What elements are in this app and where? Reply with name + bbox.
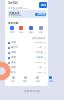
staticText: 消息 <box>36 80 40 83</box>
button[interactable]: 我的 <box>44 76 57 83</box>
button[interactable]: 花呗 <box>8 50 46 55</box>
staticText: 1,250.00 <box>34 41 43 44</box>
staticText: 我的 <box>49 80 53 83</box>
staticText: 保险 <box>11 66 16 69</box>
staticText: 已开通 <box>36 51 43 54</box>
staticText: 付款 <box>10 31 14 34</box>
staticText: 3月5日 <box>8 1 19 5</box>
staticText: 1200 <box>37 71 43 74</box>
button[interactable]: 借呗 <box>8 55 46 60</box>
staticText: 基金 <box>11 61 16 64</box>
staticText: 权温提示大家 <box>24 89 40 92</box>
button[interactable]: 余额 <box>8 40 46 45</box>
staticText: 账单 <box>29 31 33 34</box>
staticText: 理财 <box>23 80 27 83</box>
staticText: 银行卡 <box>11 46 19 49</box>
button[interactable]: 消息 <box>31 76 44 83</box>
staticText: 今天多云转晴 18°C <box>8 6 29 9</box>
staticText: 去查看 <box>36 56 43 59</box>
button[interactable]: 签到 <box>39 2 47 8</box>
staticText: 余额 <box>11 41 16 44</box>
staticText: 首页 <box>11 80 15 83</box>
button[interactable]: 立即开通 <box>35 13 46 16</box>
button[interactable]: 保险 <box>8 65 46 70</box>
staticText: 开通会员 <box>9 11 20 14</box>
staticText: 借呗 <box>11 56 16 59</box>
staticText: 花呗 <box>11 51 16 54</box>
button[interactable]: 卡包 <box>16 26 26 34</box>
staticText: 签到 <box>41 4 46 7</box>
staticText: 积分 <box>11 71 16 74</box>
staticText: 享受更多权益 <box>9 14 21 17</box>
staticText: 卡包 <box>19 31 23 34</box>
staticText: 3 张 <box>38 46 43 49</box>
button[interactable]: 基金 <box>8 60 46 65</box>
button[interactable]: 开通会员 <box>8 10 47 18</box>
button[interactable]: 积分 <box>8 70 46 75</box>
button[interactable]: 付款 <box>7 26 16 34</box>
staticText: 更多 <box>39 31 43 34</box>
staticText: 立即开通 <box>37 13 45 16</box>
button[interactable]: 银行卡 <box>8 45 46 50</box>
button[interactable]: 账单 <box>26 26 36 34</box>
button[interactable]: 理财 <box>19 76 31 83</box>
button[interactable]: 更多 <box>36 26 46 34</box>
staticText: +2.31% <box>35 61 43 64</box>
button[interactable]: 首页 <box>7 76 19 83</box>
staticText: 查看全部账单 <box>32 37 46 40</box>
staticText: 2 份 <box>38 66 43 69</box>
staticText: 常用功能 <box>8 21 19 24</box>
